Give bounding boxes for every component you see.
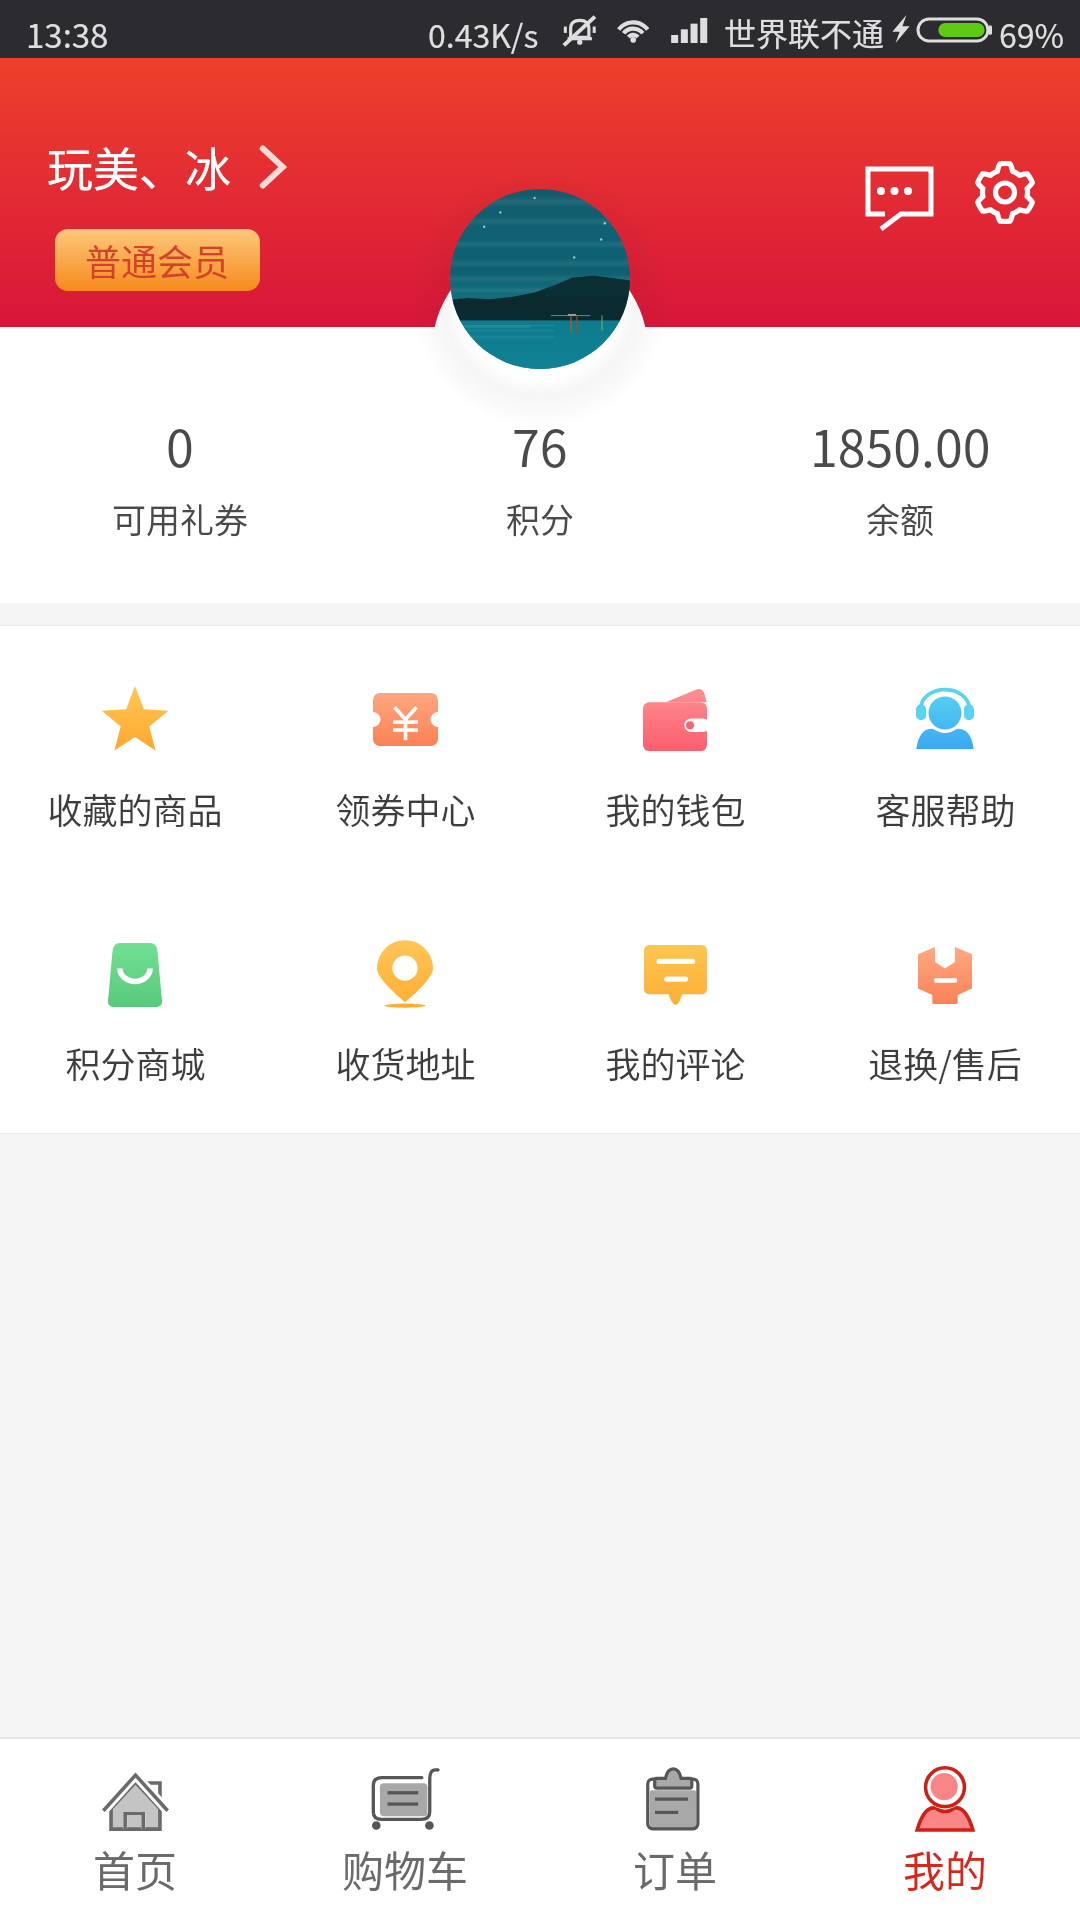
- staticText: 76: [512, 409, 568, 481]
- staticText: 积分: [506, 494, 574, 543]
- staticText: 69%: [999, 11, 1064, 57]
- staticText: 我的评论: [605, 1037, 746, 1088]
- button[interactable]: 普通会员: [55, 229, 260, 291]
- button[interactable]: 76: [360, 327, 720, 603]
- button[interactable]: 我的: [810, 1739, 1080, 1920]
- staticText: 0: [166, 409, 194, 481]
- button[interactable]: Settings: [963, 153, 1047, 237]
- button[interactable]: 客服帮助: [810, 626, 1080, 879]
- button[interactable]: 购物车: [270, 1739, 540, 1920]
- button[interactable]: 收藏的商品: [0, 626, 270, 879]
- staticText: 1850.00: [810, 409, 991, 481]
- staticText: 13:38: [26, 10, 109, 58]
- staticText: 余额: [866, 494, 934, 543]
- staticText: 客服帮助: [875, 783, 1016, 834]
- button[interactable]: 收货地址: [270, 879, 540, 1133]
- button[interactable]: Messages: [848, 153, 952, 243]
- staticText: 我的: [903, 1838, 988, 1899]
- button[interactable]: 我的评论: [540, 879, 810, 1133]
- button[interactable]: 退换/售后: [810, 879, 1080, 1133]
- staticText: 订单: [633, 1838, 718, 1899]
- staticText: 可用礼券: [112, 494, 248, 543]
- staticText: 退换/售后: [868, 1037, 1022, 1088]
- button[interactable]: 玩美、冰: [47, 133, 286, 200]
- staticText: 0.43K/s: [428, 11, 539, 57]
- button[interactable]: 我的钱包: [540, 626, 810, 879]
- button[interactable]: Profile photo: [450, 189, 630, 369]
- button[interactable]: 1850.00: [720, 327, 1080, 603]
- staticText: 普通会员: [85, 234, 230, 286]
- staticText: 积分商城: [65, 1037, 206, 1088]
- staticText: 收藏的商品: [47, 783, 223, 834]
- staticText: 领券中心: [335, 783, 476, 834]
- staticText: 世界联不通: [724, 9, 885, 55]
- button[interactable]: 订单: [540, 1739, 810, 1920]
- button[interactable]: 0: [0, 327, 360, 603]
- staticText: 首页: [93, 1838, 178, 1899]
- button[interactable]: 领券中心: [270, 626, 540, 879]
- button[interactable]: 积分商城: [0, 879, 270, 1133]
- staticText: 我的钱包: [605, 783, 746, 834]
- button[interactable]: 首页: [0, 1739, 270, 1920]
- staticText: 玩美、冰: [47, 133, 231, 200]
- staticText: 收货地址: [335, 1037, 476, 1088]
- staticText: 购物车: [342, 1838, 469, 1899]
